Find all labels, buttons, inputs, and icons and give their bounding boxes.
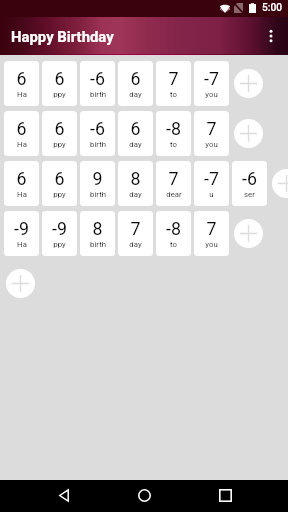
staticText: -6 bbox=[90, 68, 105, 89]
button[interactable]: -6 bbox=[80, 61, 115, 106]
button[interactable]: 7 bbox=[156, 161, 191, 206]
staticText: -6 bbox=[242, 168, 257, 189]
button[interactable]: 7 bbox=[156, 61, 191, 106]
staticText: 7 bbox=[206, 218, 217, 239]
staticText: day bbox=[129, 240, 142, 249]
button[interactable]: Add bbox=[234, 69, 263, 98]
staticText: birth bbox=[90, 140, 106, 149]
staticText: Ha bbox=[17, 140, 27, 149]
staticText: 7 bbox=[206, 118, 217, 139]
button[interactable]: 9 bbox=[80, 161, 115, 206]
button[interactable]: Back bbox=[48, 479, 80, 511]
button[interactable]: -9 bbox=[4, 211, 39, 256]
staticText: -9 bbox=[52, 218, 67, 239]
button[interactable]: More options bbox=[254, 19, 288, 53]
staticText: -8 bbox=[166, 218, 181, 239]
button[interactable]: 8 bbox=[118, 161, 153, 206]
button[interactable]: 6 bbox=[4, 61, 39, 106]
button[interactable]: -7 bbox=[194, 161, 229, 206]
button[interactable]: 7 bbox=[118, 211, 153, 256]
button[interactable]: Add bbox=[272, 169, 288, 198]
staticText: -8 bbox=[166, 118, 181, 139]
staticText: 6 bbox=[16, 118, 27, 139]
staticText: you bbox=[205, 240, 218, 249]
button[interactable]: Add bbox=[234, 219, 263, 248]
button[interactable]: 6 bbox=[118, 61, 153, 106]
staticText: ppy bbox=[53, 140, 66, 149]
staticText: -6 bbox=[90, 118, 105, 139]
button[interactable]: 6 bbox=[42, 61, 77, 106]
staticText: 6 bbox=[130, 118, 141, 139]
staticText: you bbox=[205, 90, 218, 99]
staticText: 9 bbox=[92, 168, 103, 189]
staticText: birth bbox=[90, 90, 106, 99]
button[interactable]: Add bbox=[6, 269, 35, 298]
staticText: ser bbox=[244, 190, 255, 199]
staticText: Ha bbox=[17, 190, 27, 199]
staticText: birth bbox=[90, 190, 106, 199]
button[interactable]: Home bbox=[128, 479, 160, 511]
button[interactable]: 6 bbox=[118, 111, 153, 156]
staticText: 6 bbox=[54, 68, 65, 89]
staticText: -7 bbox=[204, 168, 219, 189]
button[interactable]: 6 bbox=[4, 111, 39, 156]
button[interactable]: 8 bbox=[80, 211, 115, 256]
button[interactable]: -6 bbox=[80, 111, 115, 156]
staticText: ppy bbox=[53, 90, 66, 99]
staticText: 8 bbox=[92, 218, 103, 239]
staticText: ppy bbox=[53, 240, 66, 249]
button[interactable]: -9 bbox=[42, 211, 77, 256]
button[interactable]: Recent apps bbox=[209, 479, 241, 511]
staticText: to bbox=[170, 240, 177, 249]
button[interactable]: Add bbox=[234, 119, 263, 148]
staticText: -9 bbox=[14, 218, 29, 239]
staticText: day bbox=[129, 190, 142, 199]
button[interactable]: 6 bbox=[42, 111, 77, 156]
button[interactable]: 7 bbox=[194, 111, 229, 156]
staticText: day bbox=[129, 90, 142, 99]
staticText: ppy bbox=[53, 190, 66, 199]
staticText: 6 bbox=[16, 168, 27, 189]
staticText: birth bbox=[90, 240, 106, 249]
button[interactable]: -8 bbox=[156, 111, 191, 156]
staticText: to bbox=[170, 140, 177, 149]
staticText: 6 bbox=[54, 168, 65, 189]
staticText: day bbox=[129, 140, 142, 149]
button[interactable]: 7 bbox=[194, 211, 229, 256]
staticText: Ha bbox=[17, 90, 27, 99]
staticText: 7 bbox=[168, 68, 179, 89]
staticText: -7 bbox=[204, 68, 219, 89]
staticText: 6 bbox=[54, 118, 65, 139]
staticText: dear bbox=[166, 190, 182, 199]
staticText: Happy Birthday bbox=[11, 28, 114, 45]
staticText: 5:00 bbox=[262, 2, 283, 14]
staticText: 7 bbox=[168, 168, 179, 189]
button[interactable]: -8 bbox=[156, 211, 191, 256]
staticText: u bbox=[209, 190, 214, 199]
staticText: 6 bbox=[16, 68, 27, 89]
staticText: Ha bbox=[17, 240, 27, 249]
button[interactable]: 6 bbox=[4, 161, 39, 206]
staticText: 7 bbox=[130, 218, 141, 239]
button[interactable]: 6 bbox=[42, 161, 77, 206]
staticText: you bbox=[205, 140, 218, 149]
button[interactable]: -7 bbox=[194, 61, 229, 106]
staticText: 6 bbox=[130, 68, 141, 89]
staticText: 8 bbox=[130, 168, 141, 189]
staticText: to bbox=[170, 90, 177, 99]
button[interactable]: -6 bbox=[232, 161, 267, 206]
